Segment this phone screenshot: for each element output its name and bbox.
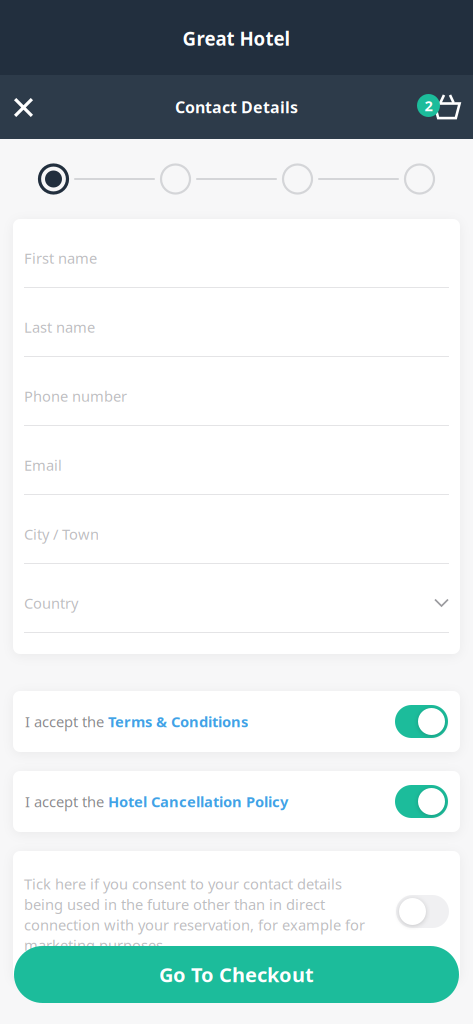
button[interactable]: First name bbox=[13, 219, 460, 288]
staticText: Tick here if you consent to your contact… bbox=[24, 874, 342, 893]
button[interactable]: Go To Checkout bbox=[14, 946, 459, 1003]
button[interactable]: Last name bbox=[13, 288, 460, 357]
staticText: connection with your reservation, for ex… bbox=[24, 915, 365, 934]
staticText: Go To Checkout bbox=[159, 961, 314, 988]
button[interactable]: Tick here if you consent to your contact… bbox=[13, 851, 460, 980]
button[interactable]: Country bbox=[13, 564, 460, 633]
button[interactable]: I accept the bbox=[13, 771, 460, 832]
staticText: City / Town bbox=[24, 524, 99, 544]
staticText: Contact Details bbox=[175, 96, 298, 118]
staticText: Email bbox=[24, 455, 62, 475]
staticText: I accept the bbox=[25, 792, 108, 811]
staticText: I accept the bbox=[25, 712, 108, 731]
staticText: Terms & Conditions bbox=[108, 712, 248, 731]
staticText: being used in the future other than in d… bbox=[24, 894, 325, 914]
staticText: Phone number bbox=[24, 386, 127, 406]
button[interactable]: Basket, 2 items bbox=[417, 75, 473, 139]
staticText: Great Hotel bbox=[182, 26, 290, 51]
staticText: 2 bbox=[424, 96, 432, 115]
button[interactable]: I accept the bbox=[13, 691, 460, 752]
staticText: Last name bbox=[24, 317, 95, 337]
staticText: First name bbox=[24, 248, 97, 268]
staticText: marketing purposes. bbox=[24, 935, 167, 955]
button[interactable]: Email bbox=[13, 426, 460, 495]
button[interactable]: City / Town bbox=[13, 495, 460, 564]
button[interactable]: Close bbox=[0, 75, 48, 139]
staticText: Country bbox=[24, 593, 78, 613]
staticText: Hotel Cancellation Policy bbox=[108, 792, 288, 811]
button[interactable]: Phone number bbox=[13, 357, 460, 426]
